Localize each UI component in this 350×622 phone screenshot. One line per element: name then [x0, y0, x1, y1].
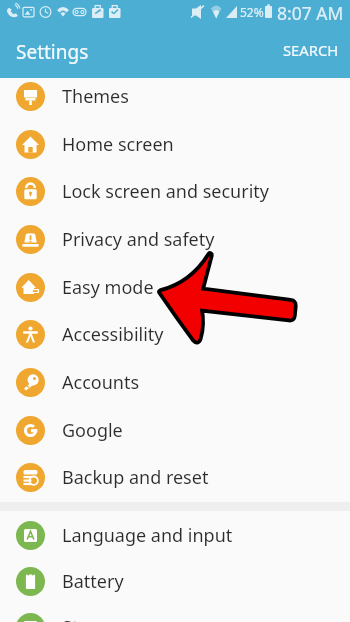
staticText: Storage: [62, 615, 128, 622]
staticText: Lock screen and security: [62, 179, 269, 204]
button[interactable]: Search settings: [271, 34, 350, 70]
button[interactable]: Easy mode: [0, 263, 350, 311]
staticText: 8:07 AM: [277, 1, 344, 25]
staticText: Language and input: [62, 523, 233, 548]
staticText: Settings: [16, 39, 89, 65]
button[interactable]: Themes: [0, 72, 350, 120]
button[interactable]: Storage: [0, 603, 350, 622]
button[interactable]: Privacy and safety: [0, 215, 350, 263]
staticText: Themes: [62, 84, 129, 109]
button[interactable]: Battery: [0, 557, 350, 605]
staticText: Accessibility: [62, 322, 164, 347]
staticText: Privacy and safety: [62, 227, 215, 252]
button[interactable]: Backup and reset: [0, 453, 350, 501]
staticText: Backup and reset: [62, 465, 209, 490]
staticText: Home screen: [62, 132, 174, 157]
staticText: Battery: [62, 569, 124, 594]
staticText: SEARCH: [283, 40, 339, 60]
staticText: Easy mode: [62, 275, 154, 300]
staticText: Accounts: [62, 370, 140, 395]
staticText: 52%: [240, 4, 264, 20]
button[interactable]: Home screen: [0, 120, 350, 168]
button[interactable]: Accessibility: [0, 310, 350, 358]
button[interactable]: Accounts: [0, 358, 350, 406]
button[interactable]: Language and input: [0, 511, 350, 559]
staticText: Google: [62, 418, 123, 443]
button[interactable]: Lock screen and security: [0, 167, 350, 215]
button[interactable]: Google: [0, 406, 350, 454]
